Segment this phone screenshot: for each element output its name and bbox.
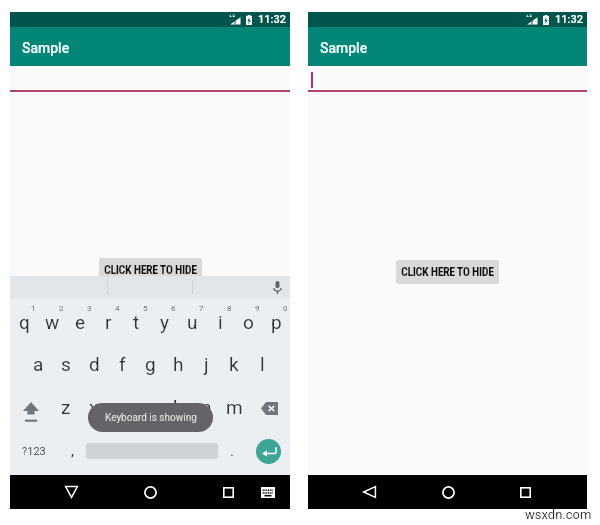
staticText: 0 — [283, 304, 288, 313]
button[interactable]: m — [220, 385, 248, 429]
staticText: 3 — [87, 304, 92, 313]
button[interactable]: 8 — [206, 298, 234, 342]
staticText: Sample — [22, 40, 70, 56]
staticText: k — [229, 353, 239, 375]
staticText: g — [145, 353, 156, 375]
staticText: 7 — [199, 304, 204, 313]
staticText: e — [75, 311, 86, 333]
staticText: 1 — [31, 304, 36, 313]
staticText: ?123 — [22, 445, 46, 458]
button[interactable]: , — [58, 429, 86, 473]
button[interactable]: 5 — [122, 298, 150, 342]
button[interactable]: Enter — [246, 429, 290, 473]
staticText: CLICK HERE TO HIDE — [104, 263, 197, 277]
button[interactable]: c — [108, 385, 136, 429]
button[interactable]: Back — [43, 475, 99, 509]
button[interactable] — [86, 429, 218, 473]
button[interactable]: 7 — [178, 298, 206, 342]
staticText: h — [173, 353, 184, 375]
staticText: a — [33, 353, 44, 375]
button[interactable]: l — [248, 342, 276, 386]
button[interactable]: 1 — [10, 298, 38, 342]
staticText: . — [230, 442, 234, 460]
button[interactable]: k — [220, 342, 248, 386]
staticText: c — [117, 396, 127, 418]
button[interactable]: z — [52, 385, 80, 429]
staticText: 11:32 — [555, 13, 583, 26]
button[interactable]: 9 — [234, 298, 262, 342]
staticText: 2 — [59, 304, 64, 313]
staticText: n — [201, 396, 212, 418]
staticText: CLICK HERE TO HIDE — [401, 265, 494, 279]
button[interactable]: 3 — [66, 298, 94, 342]
button[interactable]: h — [164, 342, 192, 386]
staticText: 6 — [171, 304, 176, 313]
button[interactable]: 2 — [38, 298, 66, 342]
button[interactable]: Back — [341, 475, 397, 509]
staticText: l — [260, 353, 265, 375]
button[interactable]: Recent apps — [497, 475, 553, 509]
button[interactable]: j — [192, 342, 220, 386]
button[interactable]: n — [192, 385, 220, 429]
button[interactable]: x — [80, 385, 108, 429]
button[interactable]: CLICK HERE TO HIDE — [99, 258, 202, 282]
staticText: o — [243, 311, 254, 333]
button[interactable]: s — [52, 342, 80, 386]
button[interactable]: b — [164, 385, 192, 429]
staticText: Sample — [320, 40, 368, 56]
staticText: v — [145, 396, 155, 418]
staticText: 9 — [255, 304, 260, 313]
staticText: x — [89, 396, 99, 418]
staticText: s — [61, 353, 71, 375]
button[interactable]: f — [108, 342, 136, 386]
button[interactable]: Backspace — [248, 385, 290, 429]
staticText: t — [133, 311, 140, 333]
staticText: Keyboard is showing — [105, 412, 197, 424]
button[interactable]: 6 — [150, 298, 178, 342]
button[interactable]: Home — [122, 475, 178, 509]
button[interactable]: a — [24, 342, 52, 386]
staticText: i — [218, 311, 223, 333]
staticText: 4 — [115, 304, 120, 313]
staticText: q — [19, 311, 30, 333]
button[interactable]: Shift — [10, 385, 52, 429]
button[interactable]: g — [136, 342, 164, 386]
button[interactable]: CLICK HERE TO HIDE — [396, 260, 499, 284]
button[interactable]: . — [218, 429, 246, 473]
button[interactable]: Home — [420, 475, 476, 509]
button[interactable]: v — [136, 385, 164, 429]
staticText: y — [160, 311, 169, 333]
staticText: f — [119, 353, 126, 375]
button[interactable]: 4 — [94, 298, 122, 342]
staticText: w — [45, 311, 60, 333]
staticText: 8 — [227, 304, 232, 313]
staticText: wsxdn.com — [525, 507, 592, 522]
button[interactable]: Recent apps — [200, 475, 256, 509]
staticText: d — [89, 353, 100, 375]
staticText: p — [271, 311, 282, 333]
staticText: , — [71, 442, 74, 460]
button[interactable]: Switch keyboard — [254, 475, 282, 509]
staticText: 11:32 — [258, 13, 286, 26]
button[interactable]: ?123 — [10, 429, 58, 473]
button[interactable]: d — [80, 342, 108, 386]
staticText: z — [61, 396, 71, 418]
staticText: m — [226, 396, 243, 418]
staticText: u — [187, 311, 198, 333]
staticText: r — [105, 311, 112, 333]
button[interactable]: 0 — [262, 298, 290, 342]
staticText: b — [173, 396, 184, 418]
staticText: j — [204, 353, 209, 375]
staticText: 5 — [143, 304, 148, 313]
